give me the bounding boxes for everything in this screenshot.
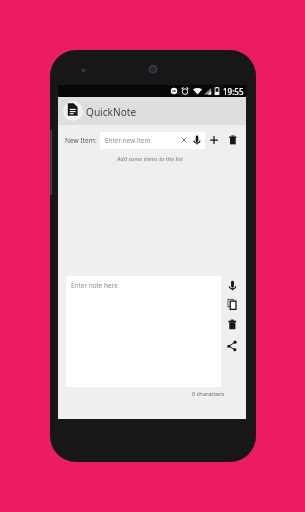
button[interactable]: Clear text	[179, 135, 189, 145]
staticText: Enter new item	[105, 136, 151, 145]
staticText: 0 characters	[192, 390, 225, 398]
staticText: QuickNote	[86, 105, 137, 119]
staticText: Add some items to the list	[56, 155, 244, 163]
button[interactable]: Voice input	[190, 132, 204, 146]
button[interactable]: Voice note	[225, 277, 240, 292]
button[interactable]: Add item	[207, 133, 221, 147]
button[interactable]: Delete note	[225, 317, 240, 332]
button[interactable]: Share note	[225, 339, 240, 354]
staticText: 19:55	[223, 86, 244, 97]
button[interactable]: Delete all items	[226, 133, 240, 147]
staticText: New Item:	[65, 136, 97, 145]
button[interactable]: Copy note	[225, 297, 240, 312]
button[interactable]: Enter note here	[66, 276, 221, 387]
staticText: Enter note here	[71, 281, 118, 290]
button[interactable]: Enter new item	[100, 132, 205, 149]
